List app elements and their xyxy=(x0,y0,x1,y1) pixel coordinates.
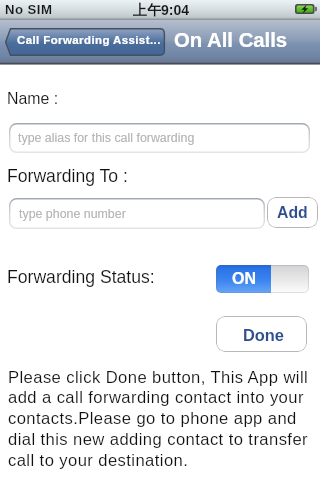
staticText: Add xyxy=(277,204,308,222)
staticText: Forwarding Status: xyxy=(7,267,155,287)
staticText: ON xyxy=(232,270,256,288)
staticText: type alias for this call forwarding xyxy=(18,131,195,145)
staticText: Forwarding To : xyxy=(7,166,128,186)
staticText: On All Calls xyxy=(174,29,288,52)
button[interactable]: type phone number xyxy=(9,198,265,229)
staticText: Please click Done button, This App will … xyxy=(8,368,316,470)
staticText: type phone number xyxy=(19,207,126,221)
staticText: Name : xyxy=(7,90,59,108)
staticText: Done xyxy=(243,326,284,344)
button[interactable]: Call Forwarding Assist... xyxy=(5,28,165,56)
button[interactable]: Done xyxy=(216,316,307,352)
button[interactable]: Add xyxy=(267,197,318,228)
staticText: 上午9:04 xyxy=(133,2,190,20)
staticText: Call Forwarding Assist... xyxy=(17,34,161,47)
staticText: No SIM xyxy=(5,2,53,17)
button[interactable]: Forwarding status toggle, on xyxy=(216,265,309,293)
button[interactable]: type alias for this call forwarding xyxy=(9,123,310,153)
